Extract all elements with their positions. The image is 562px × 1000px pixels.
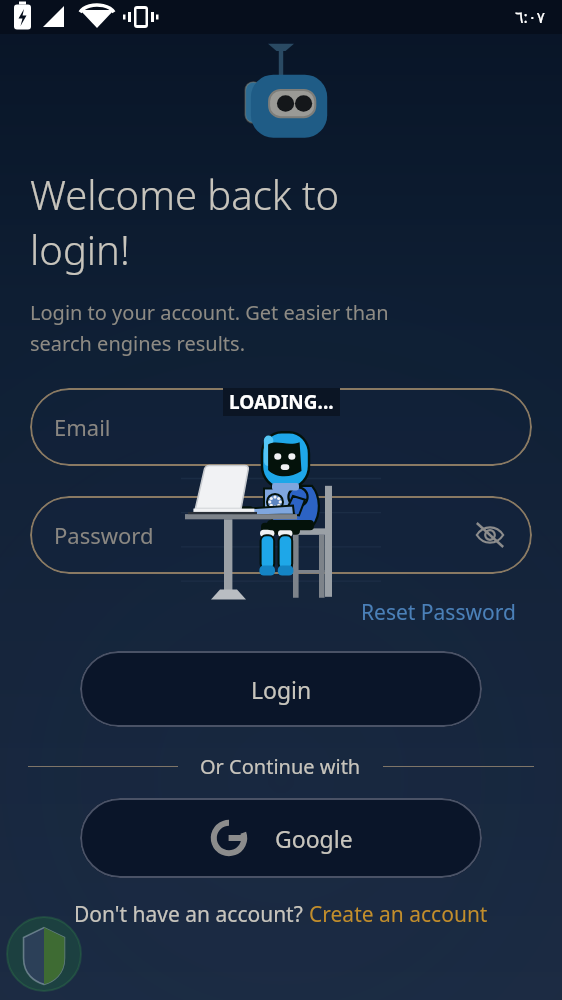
staticText: Welcome back to login! <box>30 167 340 277</box>
button[interactable]: Create an account <box>309 900 488 929</box>
staticText: Reset Password <box>361 598 516 627</box>
staticText: Or Continue with <box>200 753 361 780</box>
staticText: Create an account <box>309 900 488 929</box>
button[interactable]: Google <box>80 798 482 878</box>
staticText: Email <box>54 412 111 442</box>
button[interactable]: Email <box>30 388 532 466</box>
staticText: Google <box>275 823 353 854</box>
staticText: Password <box>54 520 154 550</box>
staticText: Login to your account. Get easier than s… <box>30 299 389 356</box>
button[interactable]: Show password <box>470 515 510 555</box>
staticText: Don't have an account? <box>74 900 309 929</box>
staticText: LOADING... <box>229 389 334 415</box>
button[interactable]: Password <box>30 496 532 574</box>
button[interactable]: Reset Password <box>357 594 520 631</box>
button[interactable]: Login <box>80 651 482 727</box>
staticText: Login <box>251 674 312 705</box>
staticText: ٦:٠٧ <box>515 6 546 28</box>
